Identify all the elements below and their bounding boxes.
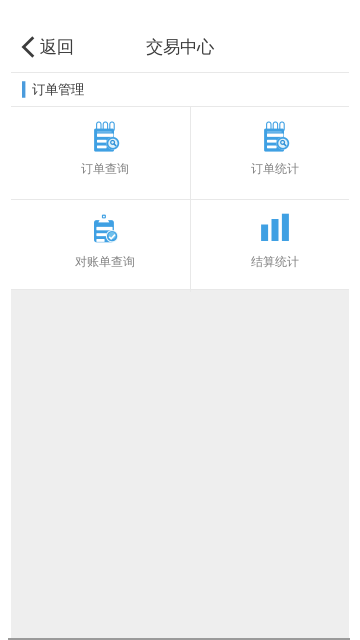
button[interactable]: 订单查询: [0, 107, 190, 199]
button[interactable]: 返回: [0, 25, 86, 69]
staticText: 返回: [40, 36, 74, 58]
staticText: 订单查询: [81, 161, 129, 176]
staticText: 订单管理: [32, 81, 84, 98]
button[interactable]: 订单统计: [190, 107, 360, 199]
staticText: 结算统计: [251, 254, 299, 269]
button[interactable]: 对账单查询: [0, 200, 190, 289]
staticText: 订单统计: [251, 161, 299, 176]
button[interactable]: 结算统计: [190, 200, 360, 289]
staticText: 对账单查询: [75, 254, 135, 269]
staticText: 交易中心: [146, 36, 214, 58]
